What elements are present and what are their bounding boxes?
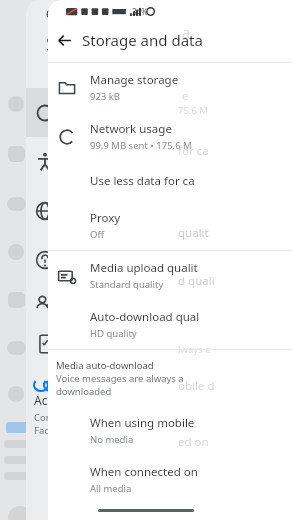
staticText: When connected on bbox=[90, 464, 198, 480]
staticText: Off bbox=[90, 228, 104, 241]
button[interactable]: Proxy bbox=[48, 201, 292, 250]
staticText: 6:29 bbox=[46, 6, 68, 21]
button[interactable]: Storage and data bbox=[26, 88, 292, 137]
staticText: When using mobile bbox=[90, 415, 198, 431]
staticText: 99.9 MB sent • 175.6 M bbox=[90, 139, 192, 152]
staticText: Storage and data bbox=[82, 30, 203, 50]
button[interactable]: Back bbox=[48, 24, 80, 56]
staticText: Auto-download qual bbox=[90, 309, 200, 325]
button[interactable]: Auto-download qual bbox=[48, 300, 292, 349]
staticText: a bbox=[182, 22, 191, 42]
staticText: All media bbox=[90, 482, 132, 495]
button[interactable]: Manage storage bbox=[48, 63, 292, 112]
staticText: Meta bbox=[51, 374, 81, 390]
button[interactable]: Help and feedback bbox=[26, 235, 292, 284]
button[interactable]: Accessibility bbox=[26, 137, 292, 186]
staticText: 923 kB bbox=[90, 90, 121, 103]
staticText: Standard quality bbox=[90, 278, 164, 291]
staticText: obile d bbox=[178, 378, 215, 394]
staticText: 75.6 M bbox=[178, 104, 208, 117]
staticText: Facebook, Instagram and m bbox=[34, 424, 159, 437]
staticText: App updates bbox=[68, 336, 137, 352]
staticText: Settings bbox=[46, 31, 119, 57]
staticText: Manage storage bbox=[90, 72, 179, 88]
staticText: ed on bbox=[178, 434, 209, 450]
staticText: Help and feedback bbox=[68, 244, 169, 260]
button[interactable]: Use less data for ca bbox=[48, 161, 292, 201]
staticText: English (device's lang bbox=[68, 213, 163, 226]
staticText: Network usage bbox=[90, 121, 172, 137]
staticText: Facebook bbox=[121, 511, 164, 520]
staticText: d quali bbox=[178, 273, 215, 289]
staticText: e bbox=[182, 88, 189, 104]
staticText: Help centre, contact bbox=[68, 262, 158, 275]
staticText: Control your experience acro bbox=[34, 411, 164, 424]
staticText: Accessibility bbox=[68, 146, 133, 162]
button[interactable]: App updates bbox=[26, 324, 292, 364]
staticText: Proxy bbox=[90, 210, 121, 226]
staticText: Media upload qualit bbox=[90, 260, 198, 276]
staticText: Use less data for ca bbox=[90, 173, 195, 189]
staticText: Accounts Centre bbox=[34, 392, 127, 408]
staticText: Network usage, auto bbox=[68, 115, 162, 128]
button[interactable]: Invite a friend bbox=[26, 284, 292, 324]
staticText: HD quality bbox=[90, 327, 137, 340]
button[interactable]: Network usage bbox=[48, 112, 292, 161]
button[interactable]: Media upload qualit bbox=[48, 251, 292, 300]
staticText: lways a bbox=[178, 343, 211, 356]
staticText: Storage and data bbox=[68, 97, 161, 113]
button[interactable]: When roaming bbox=[48, 504, 292, 520]
staticText: Voice messages are always a bbox=[56, 372, 184, 385]
button[interactable]: When connected on bbox=[48, 455, 292, 504]
button[interactable]: When using mobile bbox=[48, 406, 292, 455]
staticText: No media bbox=[90, 433, 134, 446]
button[interactable]: App language bbox=[26, 186, 292, 235]
staticText: downloaded bbox=[56, 385, 112, 398]
staticText: for ca bbox=[178, 143, 209, 159]
staticText: 34% bbox=[132, 6, 148, 17]
button[interactable]: Facebook bbox=[121, 476, 164, 520]
staticText: qualit bbox=[178, 225, 209, 241]
staticText: Media auto-download bbox=[56, 359, 154, 372]
